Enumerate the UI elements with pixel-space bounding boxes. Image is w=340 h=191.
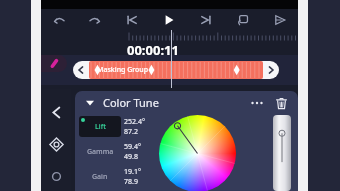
staticText: Masking Group — [97, 65, 149, 75]
button[interactable]: Gain — [79, 164, 157, 189]
button[interactable]: Color — [43, 131, 69, 157]
staticText: Color Tune — [103, 95, 159, 110]
button[interactable]: More options — [247, 93, 267, 113]
staticText: 19.1° — [124, 167, 141, 177]
button[interactable]: Skip to end — [187, 9, 224, 31]
button[interactable]: Back — [43, 99, 69, 125]
staticText: 87.2 — [124, 127, 138, 137]
button[interactable]: Loop — [224, 9, 261, 31]
button[interactable]: Masking Group — [89, 61, 263, 79]
button[interactable]: Effects — [43, 163, 69, 189]
staticText: 252.4° — [124, 117, 145, 127]
staticText: 59.4° — [124, 142, 141, 152]
button[interactable]: Skip to start — [113, 9, 150, 31]
staticText: Lift — [95, 122, 106, 132]
staticText: Gamma — [87, 147, 114, 157]
button[interactable]: Redo — [77, 9, 113, 31]
button[interactable]: Previous clip — [73, 61, 89, 79]
button[interactable]: Lift — [79, 114, 157, 139]
button[interactable]: Play — [150, 9, 187, 31]
button[interactable]: Undo — [41, 9, 77, 31]
button[interactable]: Previous clip — [73, 61, 279, 79]
button[interactable]: Luminance — [273, 115, 291, 191]
staticText: 49.8 — [124, 152, 138, 162]
button[interactable]: Collapse — [82, 95, 98, 111]
button[interactable]: Color wheel — [159, 115, 237, 191]
button[interactable]: Delete — [271, 93, 291, 113]
staticText: 00:00:11 — [127, 41, 179, 59]
button[interactable]: Audio — [41, 55, 67, 72]
button[interactable]: Gamma — [79, 139, 157, 164]
button[interactable]: Render — [261, 9, 298, 31]
staticText: Gain — [92, 172, 108, 182]
staticText: 78.9 — [124, 177, 138, 187]
button[interactable]: Next clip — [263, 61, 279, 79]
